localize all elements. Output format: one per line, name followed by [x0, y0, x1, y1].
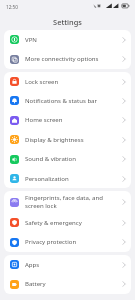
button[interactable]: Fingerprints, face data, and	[4, 191, 131, 213]
button[interactable]: Display & brightness	[4, 130, 131, 149]
button[interactable]: Safety & emergency	[4, 213, 131, 232]
button[interactable]: More connectivity options	[4, 49, 131, 69]
button[interactable]: Battery	[4, 274, 131, 294]
staticText: Fingerprints, face data, and	[25, 194, 103, 202]
button[interactable]: Lock screen	[4, 72, 131, 91]
button[interactable]: Sound & vibration	[4, 149, 131, 169]
staticText: Home screen	[25, 116, 63, 124]
staticText: 12:50	[6, 4, 18, 10]
staticText: Safety & emergency	[25, 219, 82, 227]
staticText: Display & brightness	[25, 136, 84, 144]
staticText: Settings	[53, 17, 82, 27]
staticText: Apps	[25, 261, 40, 269]
staticText: Privacy protection	[25, 238, 77, 246]
button[interactable]: VPN	[4, 30, 131, 49]
button[interactable]: Apps	[4, 255, 131, 274]
staticText: Personalization	[25, 175, 69, 183]
staticText: More connectivity options	[25, 55, 99, 63]
staticText: Lock screen	[25, 78, 59, 86]
staticText: Notifications & status bar	[25, 97, 98, 105]
button[interactable]: Privacy protection	[4, 232, 131, 252]
button[interactable]: Personalization	[4, 169, 131, 188]
staticText: Battery	[25, 280, 46, 288]
staticText: screen lock	[25, 202, 57, 210]
button[interactable]: Notifications & status bar	[4, 91, 131, 110]
staticText: Sound & vibration	[25, 155, 76, 163]
button[interactable]: Home screen	[4, 110, 131, 130]
staticText: VPN	[25, 36, 37, 44]
